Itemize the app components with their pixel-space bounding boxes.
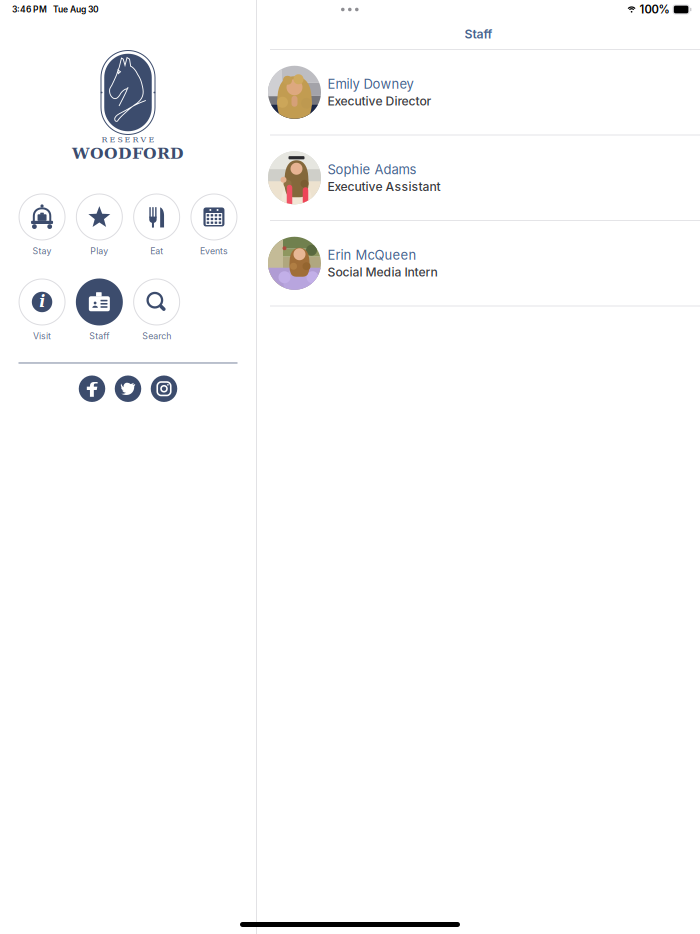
staticText: Executive Assistant — [327, 179, 440, 194]
staticText: Tue Aug 30 — [53, 4, 99, 15]
staticText: WOODFORD — [72, 144, 184, 162]
staticText: Play — [90, 246, 108, 256]
staticText: R E S E R V E — [101, 135, 154, 144]
staticText: Visit — [33, 331, 51, 341]
button[interactable]: Instagram — [151, 375, 177, 402]
staticText: 3:46 PM — [12, 4, 47, 15]
staticText: Social Media Intern — [327, 265, 437, 279]
button[interactable]: i — [13, 278, 71, 341]
button[interactable]: Play — [71, 193, 128, 256]
button[interactable]: Staff — [71, 278, 128, 341]
staticText: Emily Downey — [327, 76, 413, 92]
button[interactable]: Eat — [128, 193, 185, 256]
button[interactable]: Search — [128, 278, 185, 341]
staticText: Staff — [464, 27, 492, 41]
button[interactable]: Events — [185, 193, 243, 256]
staticText: 100% — [640, 3, 670, 16]
staticText: Executive Director — [327, 94, 431, 108]
button[interactable]: Erin McQueen — [257, 221, 700, 306]
staticText: Stay — [33, 246, 52, 256]
staticText: Sophie Adams — [327, 161, 416, 177]
staticText: i — [39, 292, 45, 311]
staticText: Erin McQueen — [327, 247, 416, 263]
staticText: Search — [142, 331, 171, 341]
staticText: Staff — [89, 331, 109, 341]
staticText: Events — [200, 246, 228, 256]
staticText: Eat — [150, 246, 163, 256]
button[interactable]: Emily Downey — [257, 50, 700, 135]
button[interactable]: Sophie Adams — [257, 135, 700, 221]
button[interactable]: Stay — [13, 193, 71, 256]
button[interactable]: Twitter — [115, 375, 141, 402]
button[interactable]: Facebook — [79, 375, 105, 402]
